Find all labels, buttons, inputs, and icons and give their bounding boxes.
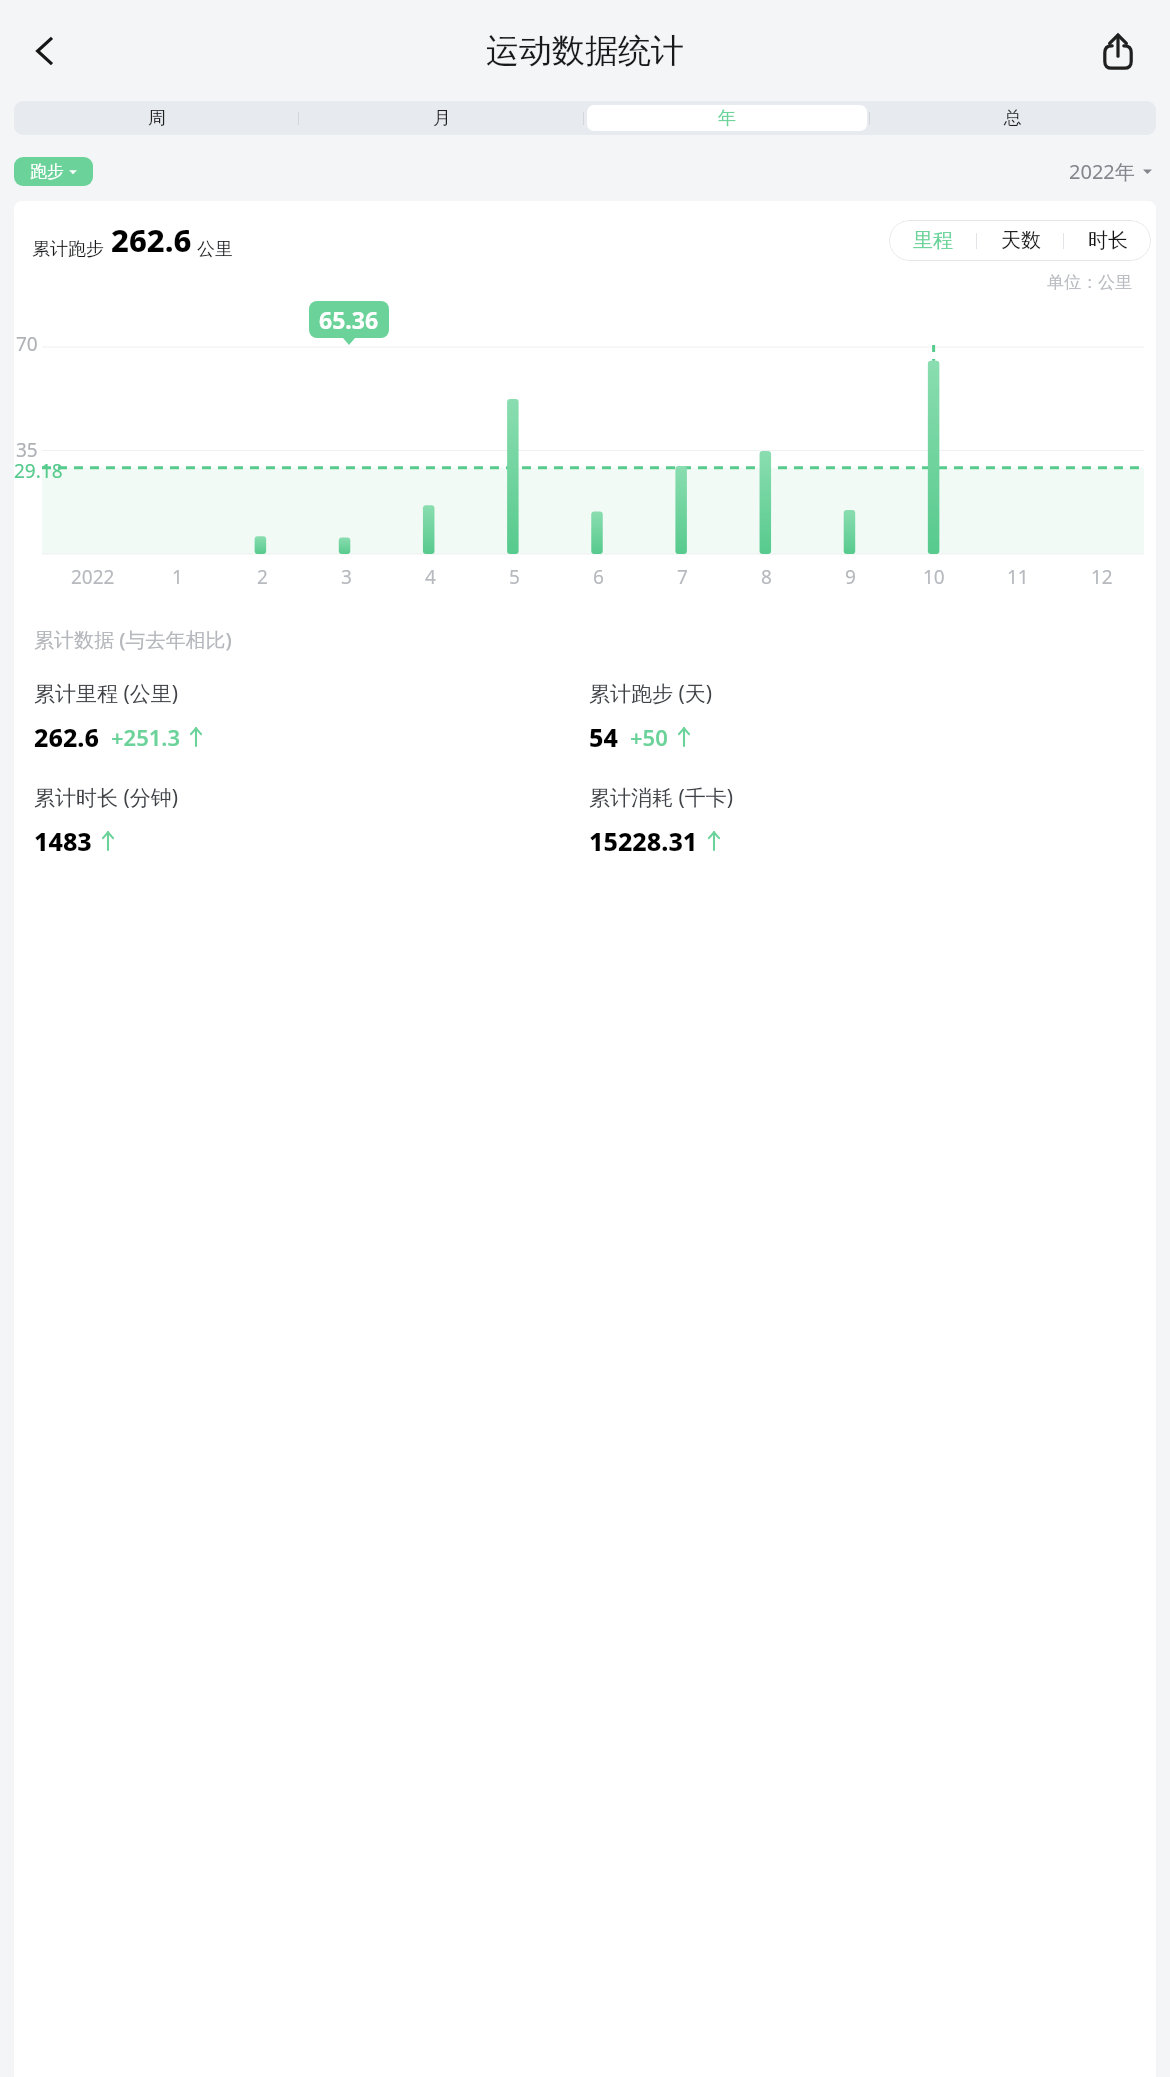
button[interactable]: 累计时长 (分钟) [34,783,589,858]
staticText: 10 [923,564,945,590]
staticText: 65.36 [319,304,379,335]
staticText: 总 [1004,107,1022,130]
button[interactable]: 天数 [977,220,1064,261]
staticText: 累计数据 (与去年相比) [34,626,232,653]
staticText: 2022年 [1069,158,1135,185]
staticText: 12 [1091,564,1113,590]
staticText: 262.6 [34,720,99,754]
staticText: 262.6 [111,219,192,261]
button[interactable]: 累计里程 (公里) [34,679,589,754]
staticText: 周 [148,107,166,130]
staticText: 年 [718,107,736,130]
staticText: 累计跑步 [32,238,104,261]
button[interactable]: Back [10,15,82,87]
staticText: 公里 [197,238,233,261]
staticText: 单位：公里 [1047,272,1132,293]
button[interactable]: Share [1082,15,1154,87]
button[interactable]: 跑步 [14,157,93,186]
staticText: 月 [433,107,451,130]
staticText: 运动数据统计 [486,30,684,72]
staticText: 35 [16,437,38,463]
staticText: 累计消耗 (千卡) [589,783,734,812]
staticText: 6 [593,564,604,590]
staticText: 累计跑步 (天) [589,679,713,708]
staticText: 3 [341,564,352,590]
staticText: 29.18 [14,458,63,484]
staticText: 里程 [913,228,953,253]
staticText: 时长 [1088,228,1128,253]
button[interactable]: 2022年 [1069,157,1156,186]
staticText: 1 [172,564,183,590]
button[interactable]: 总 [873,105,1153,131]
staticText: 5 [509,564,520,590]
button[interactable]: 累计跑步 (天) [589,679,1144,754]
button[interactable]: 累计消耗 (千卡) [589,783,1144,858]
staticText: 8 [761,564,772,590]
staticText: +50 [630,722,668,752]
staticText: 15228.31 [589,824,698,858]
staticText: 7 [677,564,688,590]
staticText: 跑步 [30,161,64,182]
staticText: +251.3 [111,722,180,752]
staticText: 11 [1007,564,1029,590]
staticText: 1483 [34,824,92,858]
button[interactable]: 时长 [1064,220,1151,261]
staticText: 累计里程 (公里) [34,679,179,708]
staticText: 4 [425,564,436,590]
staticText: 70 [16,331,38,357]
button[interactable]: 里程 [889,220,977,261]
button[interactable]: 月 [302,105,581,131]
staticText: 2 [257,564,268,590]
button[interactable]: 年 [587,105,867,131]
staticText: 2022 [71,564,115,590]
button[interactable]: 周 [17,105,296,131]
staticText: 9 [845,564,856,590]
staticText: 累计时长 (分钟) [34,783,179,812]
staticText: 54 [589,720,618,754]
staticText: 天数 [1001,228,1041,253]
